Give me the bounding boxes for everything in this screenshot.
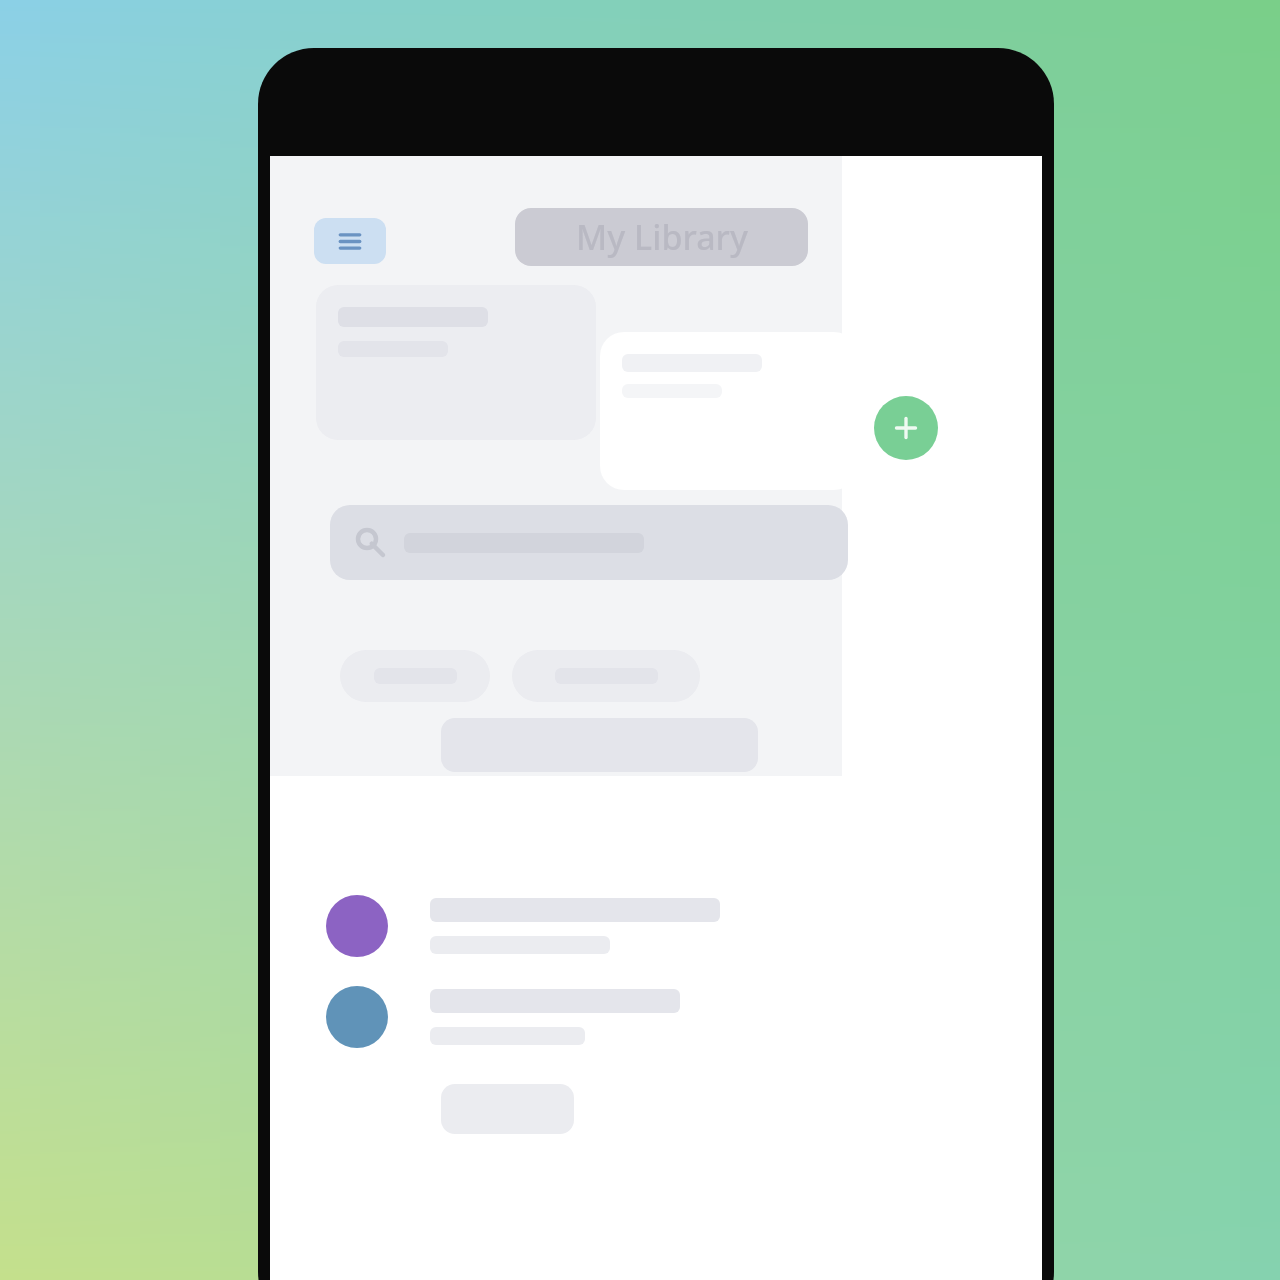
button[interactable] <box>316 285 596 440</box>
button[interactable] <box>326 977 946 1057</box>
button[interactable] <box>600 332 858 490</box>
button[interactable] <box>326 886 946 966</box>
staticText: My Library <box>576 214 748 260</box>
button[interactable]: Open navigation menu <box>314 218 386 264</box>
button[interactable] <box>512 650 700 702</box>
button[interactable]: My Library <box>515 208 808 266</box>
button[interactable] <box>330 505 848 580</box>
button[interactable]: Add item <box>874 396 938 460</box>
button[interactable] <box>441 1084 574 1134</box>
button[interactable] <box>340 650 490 702</box>
